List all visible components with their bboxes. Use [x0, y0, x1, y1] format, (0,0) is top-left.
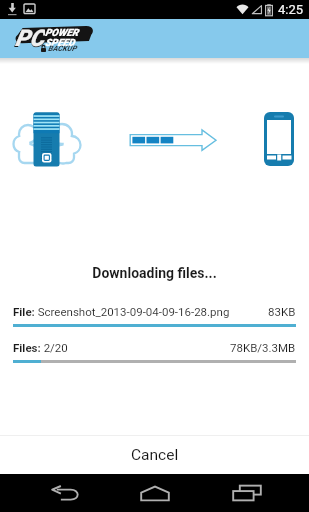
- button[interactable]: Home: [123, 474, 187, 512]
- staticText: 78KB/3.3MB: [230, 341, 296, 354]
- staticText: SPEED: [45, 37, 75, 49]
- staticText: 83KB: [268, 305, 296, 318]
- button[interactable]: Recent apps: [215, 474, 279, 512]
- staticText: Downloading files...: [0, 265, 309, 281]
- staticText: PC: [15, 25, 45, 49]
- staticText: 4:25: [278, 2, 304, 17]
- staticText: Cancel: [131, 446, 179, 464]
- staticText: BACKUP: [48, 44, 77, 53]
- staticText: POWER: [45, 27, 79, 39]
- button[interactable]: Back: [33, 474, 97, 512]
- staticText: Files: 2/20: [13, 341, 230, 354]
- staticText: File: Screenshot_2013-09-04-09-16-28.png: [13, 305, 268, 318]
- staticText: PC: [14, 25, 45, 49]
- button[interactable]: Cancel: [0, 436, 309, 474]
